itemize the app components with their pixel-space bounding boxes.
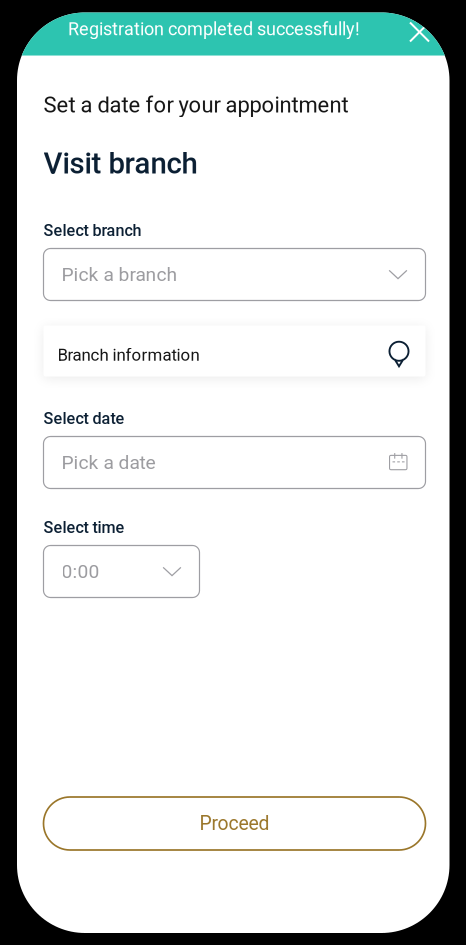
button[interactable]: Pick a date: [43, 436, 425, 488]
staticText: Select date: [43, 409, 124, 428]
staticText: Proceed: [199, 812, 269, 835]
button[interactable]: Branch information: [43, 325, 425, 376]
button[interactable]: Select time: [43, 545, 199, 597]
staticText: Set a date for your appointment: [43, 92, 348, 118]
staticText: Select time: [43, 518, 124, 537]
staticText: Pick a date: [61, 451, 155, 474]
staticText: Visit branch: [43, 146, 197, 181]
button[interactable]: Close: [397, 10, 441, 53]
staticText: Registration completed successfully!: [68, 18, 360, 40]
button[interactable]: Pick a branch: [43, 248, 425, 300]
button[interactable]: Proceed: [43, 797, 425, 850]
staticText: 0:00: [61, 560, 99, 583]
staticText: Select branch: [43, 221, 141, 240]
staticText: Branch information: [57, 345, 199, 365]
staticText: Pick a branch: [61, 263, 177, 286]
